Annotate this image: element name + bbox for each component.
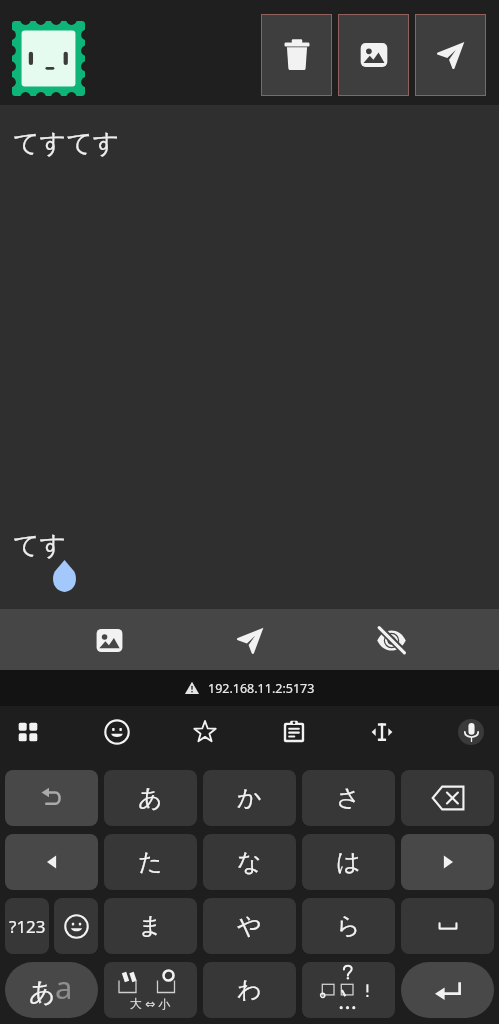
- staticText: 192.168.11.2:5173: [208, 680, 315, 697]
- button[interactable]: は: [302, 834, 395, 890]
- button[interactable]: Backspace: [401, 770, 494, 826]
- staticText: あ: [138, 783, 163, 813]
- button[interactable]: ま: [104, 898, 197, 954]
- button[interactable]: な: [203, 834, 296, 890]
- button[interactable]: や: [203, 898, 296, 954]
- staticText: あ: [29, 976, 56, 1009]
- staticText: ら: [336, 911, 361, 941]
- staticText: わ: [237, 975, 262, 1005]
- button[interactable]: Emoji: [104, 719, 130, 745]
- button[interactable]: Send: [226, 616, 274, 664]
- button[interactable]: ら: [302, 898, 395, 954]
- button[interactable]: Switch input language: [5, 962, 98, 1018]
- staticText: ま: [138, 911, 163, 941]
- button[interactable]: Delete: [261, 14, 332, 96]
- staticText: は: [336, 847, 361, 877]
- button[interactable]: Space: [401, 898, 494, 954]
- button[interactable]: Text editing: [369, 719, 395, 745]
- button[interactable]: Enter: [401, 962, 494, 1018]
- button[interactable]: わ: [203, 962, 296, 1018]
- button[interactable]: Punctuation: [302, 962, 395, 1018]
- staticText: 大 ⇔ 小: [130, 995, 171, 1011]
- staticText: てす: [13, 529, 67, 562]
- staticText: a: [55, 966, 73, 1008]
- staticText: てすてす: [13, 127, 120, 160]
- staticText: た: [138, 847, 163, 877]
- button[interactable]: Attach image: [85, 616, 133, 664]
- button[interactable]: Attach image: [338, 14, 409, 96]
- button[interactable]: Emoji: [54, 898, 98, 954]
- staticText: か: [237, 783, 262, 813]
- button[interactable]: Send: [415, 14, 486, 96]
- button[interactable]: Dakuten and small kana: [104, 962, 197, 1018]
- staticText: な: [237, 847, 262, 877]
- button[interactable]: Clipboard: [281, 719, 307, 745]
- staticText: や: [237, 911, 262, 941]
- button[interactable]: Move cursor left: [5, 834, 98, 890]
- button[interactable]: Hide preview: [367, 616, 415, 664]
- button[interactable]: Voice input: [458, 719, 484, 745]
- button[interactable]: Keyboard layouts: [15, 719, 41, 745]
- button[interactable]: Favorites: [192, 719, 218, 745]
- staticText: さ: [336, 783, 361, 813]
- button[interactable]: た: [104, 834, 197, 890]
- button[interactable]: あ: [104, 770, 197, 826]
- button[interactable]: か: [203, 770, 296, 826]
- button[interactable]: ?123: [5, 898, 49, 954]
- button[interactable]: さ: [302, 770, 395, 826]
- button[interactable]: Undo: [5, 770, 98, 826]
- button[interactable]: Move cursor right: [401, 834, 494, 890]
- staticText: ?123: [9, 915, 46, 938]
